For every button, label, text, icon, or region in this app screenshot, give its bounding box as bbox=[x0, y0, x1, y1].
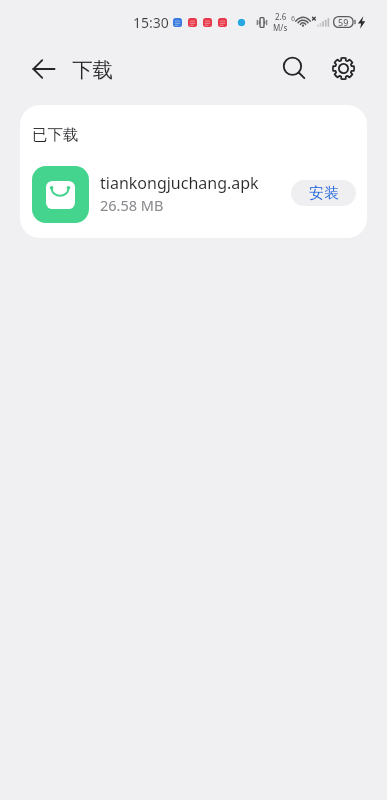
staticText: 2.6 bbox=[275, 11, 287, 22]
staticText: 26.58 MB bbox=[100, 195, 164, 215]
button[interactable]: tiankongjuchang.apk bbox=[20, 158, 367, 230]
button[interactable]: Settings bbox=[323, 48, 363, 88]
staticText: 已下载 bbox=[32, 125, 79, 145]
staticText: 下载 bbox=[72, 57, 113, 83]
staticText: 59 bbox=[338, 16, 349, 28]
button[interactable]: 安装 bbox=[291, 180, 356, 206]
button[interactable]: Search bbox=[274, 48, 314, 88]
button[interactable]: Back bbox=[22, 47, 66, 91]
staticText: 安装 bbox=[309, 184, 339, 203]
staticText: 6 bbox=[291, 14, 296, 24]
staticText: M/s bbox=[273, 22, 288, 33]
staticText: tiankongjuchang.apk bbox=[100, 172, 259, 194]
staticText: 15:30 bbox=[133, 13, 169, 32]
